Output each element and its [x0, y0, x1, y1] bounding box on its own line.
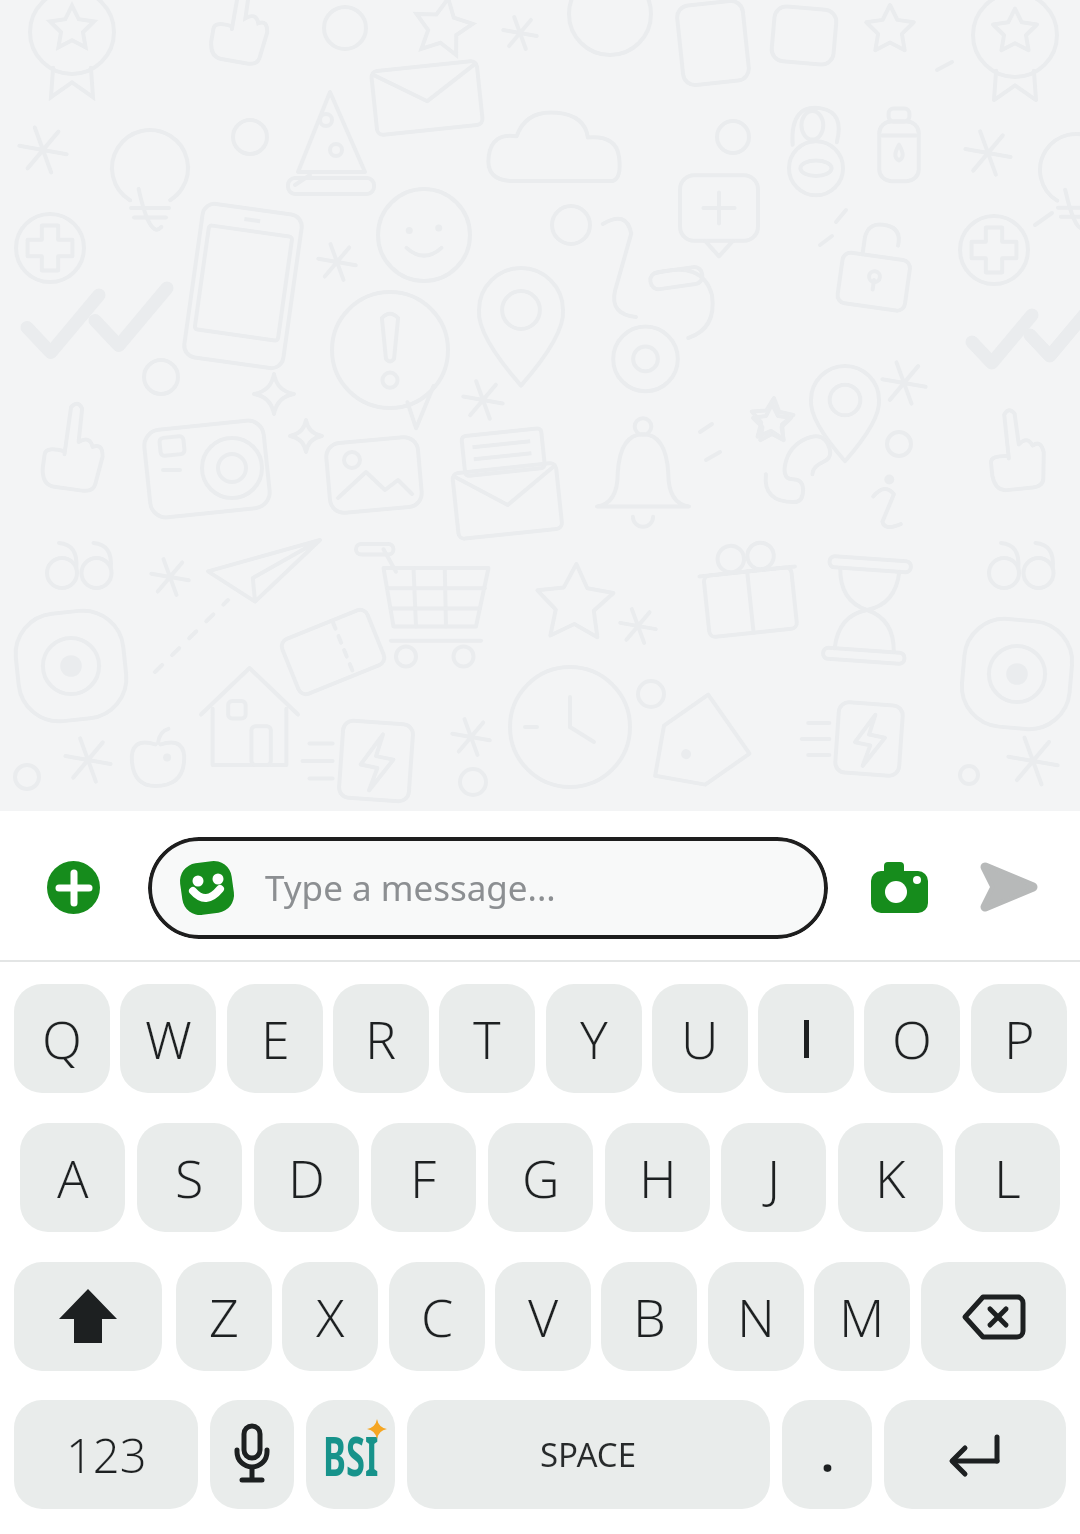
staticText: S [175, 1142, 204, 1213]
staticText: O [892, 1003, 932, 1074]
staticText: Y [580, 1003, 608, 1074]
button[interactable]: U [652, 984, 748, 1093]
button[interactable]: BSI [306, 1400, 395, 1509]
button[interactable]: T [439, 984, 535, 1093]
staticText: F [410, 1142, 437, 1213]
button[interactable]: O [864, 984, 960, 1093]
staticText: R [365, 1003, 397, 1074]
button[interactable] [866, 856, 934, 920]
button[interactable]: S [137, 1123, 242, 1232]
button[interactable] [758, 984, 854, 1093]
button[interactable]: A [20, 1123, 125, 1232]
button[interactable]: Type a message... [148, 837, 828, 939]
staticText: V [528, 1281, 559, 1352]
button[interactable]: . [782, 1400, 872, 1509]
button[interactable]: SPACE [407, 1400, 770, 1509]
staticText: . [821, 1423, 834, 1486]
staticText: C [421, 1281, 454, 1352]
staticText: D [288, 1142, 325, 1213]
staticText: Z [209, 1281, 239, 1352]
button[interactable] [14, 1262, 162, 1371]
button[interactable]: Z [176, 1262, 272, 1371]
staticText: G [522, 1142, 560, 1213]
staticText: T [473, 1003, 501, 1074]
button[interactable]: V [495, 1262, 591, 1371]
button[interactable]: E [227, 984, 323, 1093]
staticText: B [633, 1281, 666, 1352]
button[interactable]: 123 [14, 1400, 198, 1509]
button[interactable]: H [605, 1123, 710, 1232]
button[interactable]: N [708, 1262, 804, 1371]
staticText: BSI [323, 1418, 379, 1491]
button[interactable] [210, 1400, 294, 1509]
button[interactable]: D [254, 1123, 359, 1232]
staticText: L [994, 1142, 1021, 1213]
staticText: P [1004, 1003, 1035, 1074]
button[interactable]: J [721, 1123, 826, 1232]
button[interactable]: G [488, 1123, 593, 1232]
staticText: K [875, 1142, 906, 1213]
staticText: J [767, 1142, 781, 1213]
staticText: 123 [66, 1423, 147, 1487]
staticText: E [261, 1003, 290, 1074]
button[interactable]: R [333, 984, 429, 1093]
staticText: SPACE [540, 1432, 637, 1477]
staticText: U [681, 1003, 719, 1074]
button[interactable] [884, 1400, 1066, 1509]
button[interactable]: B [601, 1262, 697, 1371]
button[interactable]: Y [546, 984, 642, 1093]
staticText: X [316, 1281, 345, 1352]
button[interactable]: P [971, 984, 1067, 1093]
staticText: W [145, 1003, 192, 1074]
button[interactable] [976, 856, 1042, 918]
staticText: A [57, 1142, 89, 1213]
button[interactable]: F [371, 1123, 476, 1232]
button[interactable] [47, 861, 100, 914]
staticText: H [639, 1142, 677, 1213]
button[interactable] [921, 1262, 1066, 1371]
staticText: Q [42, 1003, 82, 1074]
button[interactable]: K [838, 1123, 943, 1232]
button[interactable]: Q [14, 984, 110, 1093]
button[interactable]: C [389, 1262, 485, 1371]
button[interactable]: W [120, 984, 216, 1093]
button[interactable]: X [282, 1262, 378, 1371]
staticText: M [839, 1281, 885, 1352]
staticText: Type a message... [265, 864, 556, 912]
button[interactable]: L [955, 1123, 1060, 1232]
button[interactable]: M [814, 1262, 910, 1371]
staticText: N [737, 1281, 775, 1352]
